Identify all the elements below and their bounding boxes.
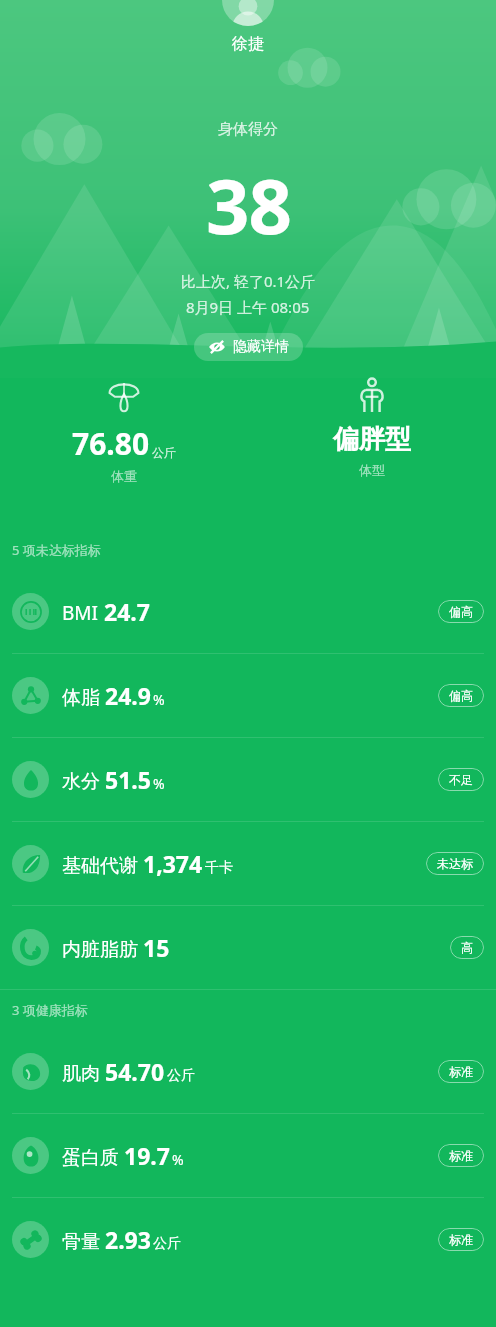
button[interactable]: 76.80 — [0, 377, 248, 484]
staticText: 8月9日 上午 08:05 — [186, 297, 310, 317]
staticText: 未达标 — [437, 856, 473, 871]
staticText: % — [153, 774, 165, 793]
button[interactable]: 偏胖型 — [248, 377, 496, 478]
staticText: 水分 — [62, 770, 100, 794]
staticText: 体型 — [359, 462, 385, 478]
button[interactable]: 隐藏详情 — [194, 333, 303, 361]
staticText: 19.7 — [124, 1140, 170, 1171]
staticText: 公斤 — [152, 445, 176, 460]
staticText: 内脏脂肪 — [62, 938, 138, 962]
button[interactable]: 标准 — [438, 1144, 484, 1167]
button[interactable]: 肌肉 — [0, 1030, 496, 1113]
staticText: % — [172, 1150, 184, 1169]
staticText: 骨量 — [62, 1230, 100, 1254]
button[interactable]: 体脂 — [0, 654, 496, 737]
staticText: 标准 — [449, 1064, 473, 1079]
staticText: 千卡 — [205, 859, 233, 877]
staticText: 1,374 — [143, 848, 203, 879]
button[interactable]: 偏高 — [438, 684, 484, 707]
button[interactable]: 标准 — [438, 1228, 484, 1251]
staticText: 身体得分 — [218, 120, 278, 139]
staticText: % — [153, 690, 165, 709]
staticText: 15 — [143, 932, 170, 963]
button[interactable]: 水分 — [0, 738, 496, 821]
staticText: 24.9 — [105, 680, 151, 711]
button[interactable]: 高 — [450, 936, 484, 959]
button[interactable]: 用户头像 — [222, 0, 274, 26]
staticText: 24.7 — [104, 596, 150, 627]
staticText: 2.93 — [105, 1224, 151, 1255]
staticText: 体重 — [111, 468, 137, 484]
staticText: 公斤 — [167, 1067, 195, 1085]
staticText: 比上次, 轻了0.1公斤 — [181, 271, 316, 291]
staticText: 肌肉 — [62, 1062, 100, 1086]
staticText: 隐藏详情 — [233, 338, 289, 356]
staticText: 38 — [206, 153, 291, 257]
staticText: 徐捷 — [232, 34, 264, 54]
button[interactable]: 基础代谢 — [0, 822, 496, 905]
button[interactable]: 偏高 — [438, 600, 484, 623]
staticText: 体脂 — [62, 686, 100, 710]
staticText: 蛋白质 — [62, 1146, 119, 1170]
staticText: 偏胖型 — [333, 423, 411, 456]
staticText: BMI — [62, 600, 99, 626]
staticText: 基础代谢 — [62, 854, 138, 878]
staticText: 公斤 — [153, 1235, 181, 1253]
staticText: 标准 — [449, 1148, 473, 1163]
staticText: 高 — [461, 940, 473, 955]
staticText: 标准 — [449, 1232, 473, 1247]
button[interactable]: 不足 — [438, 768, 484, 791]
staticText: 54.70 — [105, 1056, 165, 1087]
button[interactable]: 内脏脂肪 — [0, 906, 496, 989]
staticText: 3 项健康指标 — [12, 1001, 88, 1019]
staticText: 偏高 — [449, 688, 473, 703]
staticText: 51.5 — [105, 764, 151, 795]
button[interactable]: 未达标 — [426, 852, 484, 875]
staticText: 5 项未达标指标 — [12, 541, 101, 559]
button[interactable]: 骨量 — [0, 1198, 496, 1281]
button[interactable]: 蛋白质 — [0, 1114, 496, 1197]
staticText: 偏高 — [449, 604, 473, 619]
staticText: 不足 — [449, 772, 473, 787]
staticText: 76.80 — [72, 423, 150, 464]
button[interactable]: BMI — [0, 570, 496, 653]
button[interactable]: 标准 — [438, 1060, 484, 1083]
